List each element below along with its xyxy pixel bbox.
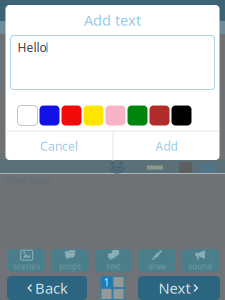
- button[interactable]: sound: [182, 249, 219, 272]
- button[interactable]: Pages: [100, 276, 124, 300]
- staticText: Cancel: [40, 138, 78, 154]
- button[interactable]: Colour 3: [61, 105, 81, 125]
- staticText: Add text: [84, 10, 141, 30]
- button[interactable]: Colour 8: [171, 105, 191, 125]
- button[interactable]: Cancel: [5, 131, 112, 160]
- button[interactable]: Colour 7: [149, 105, 169, 125]
- button[interactable]: scenes: [8, 249, 45, 272]
- button[interactable]: Next: [138, 276, 220, 300]
- staticText: props: [59, 261, 81, 272]
- button[interactable]: Colour 1: [17, 105, 37, 125]
- button[interactable]: text: [95, 249, 132, 272]
- staticText: draw: [148, 261, 166, 272]
- button[interactable]: Colour 6: [127, 105, 147, 125]
- staticText: 1: [103, 275, 109, 289]
- staticText: Add: [155, 138, 177, 154]
- button[interactable]: Add: [113, 131, 219, 160]
- staticText: Back: [35, 278, 68, 298]
- button[interactable]: draw: [138, 249, 176, 272]
- staticText: sound: [188, 261, 212, 272]
- staticText: scenes: [13, 261, 40, 272]
- staticText: new save: [5, 173, 51, 187]
- staticText: Next: [158, 278, 190, 298]
- button[interactable]: Colour 5: [105, 105, 125, 125]
- staticText: Hello: [17, 39, 46, 55]
- button[interactable]: Colour 4: [83, 105, 103, 125]
- button[interactable]: Back: [7, 276, 87, 300]
- button[interactable]: Colour 2: [39, 105, 59, 125]
- button[interactable]: props: [51, 249, 89, 272]
- staticText: text: [106, 261, 120, 272]
